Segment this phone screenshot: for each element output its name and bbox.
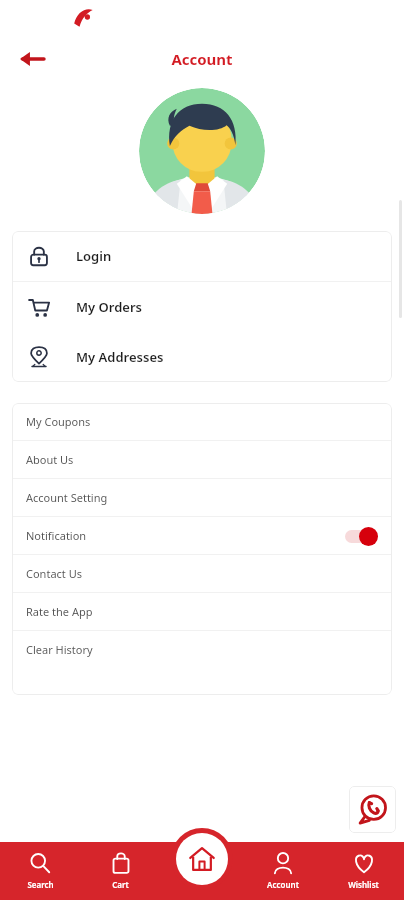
staticText: Rate the App xyxy=(26,604,93,619)
button[interactable]: Contact Us xyxy=(12,555,392,592)
staticText: Login xyxy=(76,247,112,265)
staticText: My Coupons xyxy=(26,414,91,429)
staticText: Account Setting xyxy=(26,490,108,505)
button[interactable]: My Coupons xyxy=(12,403,392,440)
staticText: Cart xyxy=(112,879,129,890)
button[interactable]: Rate the App xyxy=(12,593,392,630)
staticText: Search xyxy=(27,879,54,890)
button[interactable]: About Us xyxy=(12,441,392,478)
staticText: Clear History xyxy=(26,642,93,657)
button[interactable]: Back xyxy=(12,39,52,79)
button[interactable]: Account xyxy=(242,846,323,896)
button[interactable]: Search xyxy=(0,846,80,896)
button[interactable]: My Addresses xyxy=(12,332,392,382)
staticText: Contact Us xyxy=(26,566,82,581)
staticText: Wishlist xyxy=(348,879,379,890)
button[interactable]: Clear History xyxy=(12,631,392,668)
button[interactable]: WhatsApp chat xyxy=(349,786,396,833)
button[interactable]: Account Setting xyxy=(12,479,392,516)
button[interactable]: Login xyxy=(12,231,392,281)
staticText: Account xyxy=(267,879,299,890)
staticText: About Us xyxy=(26,452,74,467)
staticText: Notification xyxy=(26,528,87,543)
button[interactable]: Cart xyxy=(80,846,161,896)
button[interactable]: Notification toggle, on xyxy=(342,526,378,546)
staticText: My Addresses xyxy=(76,348,164,366)
staticText: My Orders xyxy=(76,298,142,316)
button[interactable]: My Orders xyxy=(12,282,392,332)
button[interactable]: Home xyxy=(176,833,228,885)
staticText: Account xyxy=(171,49,233,69)
button[interactable]: Notification xyxy=(12,517,392,554)
button[interactable] xyxy=(139,88,265,214)
button[interactable]: Wishlist xyxy=(323,846,404,896)
